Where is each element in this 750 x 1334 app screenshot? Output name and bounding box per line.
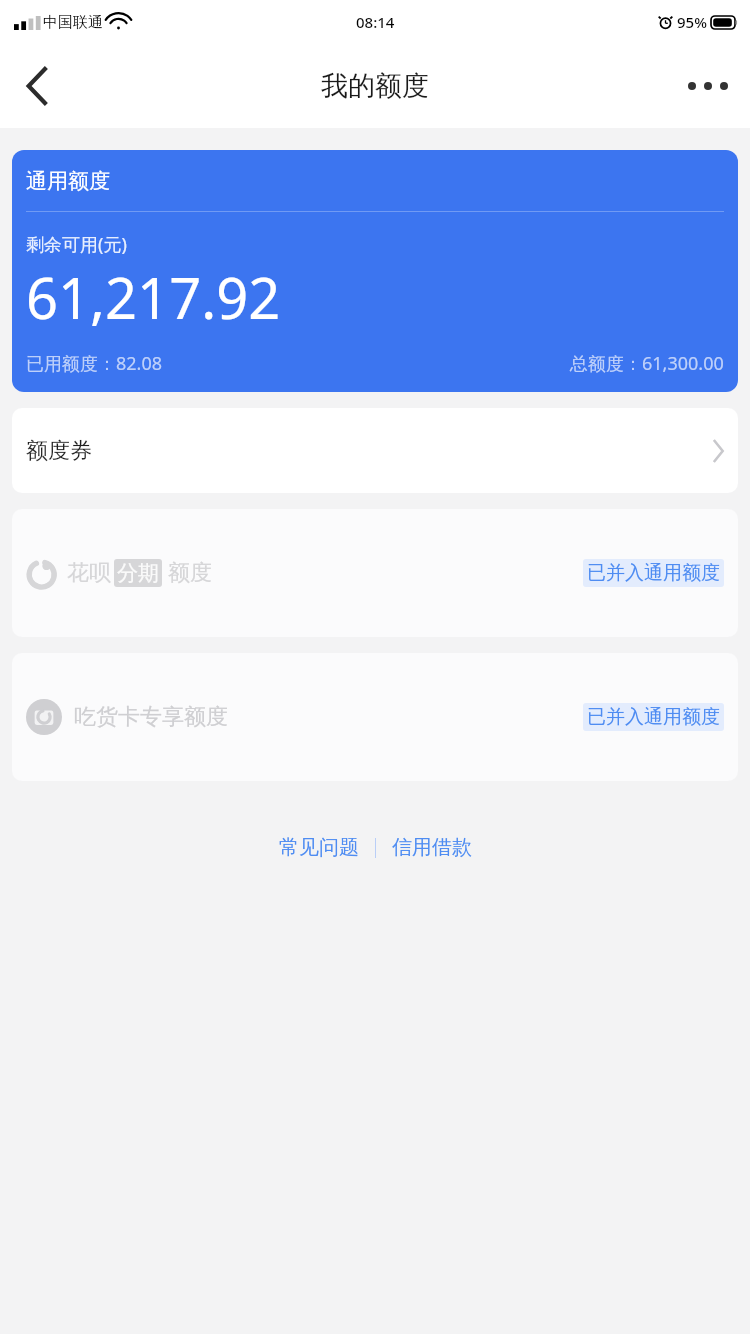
- button[interactable]: 花呗: [12, 509, 738, 637]
- button[interactable]: 吃货卡专享额度: [12, 653, 738, 781]
- staticText: 常见问题: [279, 835, 359, 860]
- button[interactable]: 常见问题: [273, 831, 365, 864]
- staticText: 额度: [168, 559, 212, 587]
- staticText: 我的额度: [321, 69, 429, 103]
- staticText: 61,217.92: [26, 259, 281, 335]
- staticText: 08:14: [356, 12, 395, 32]
- button[interactable]: 通用额度: [12, 150, 738, 392]
- staticText: 已并入通用额度: [587, 561, 720, 585]
- button[interactable]: Back: [8, 57, 66, 115]
- staticText: 吃货卡专享额度: [74, 703, 228, 731]
- staticText: 分期: [117, 560, 159, 586]
- staticText: 花呗: [67, 559, 111, 587]
- staticText: 95%: [677, 12, 707, 32]
- staticText: 中国联通: [43, 13, 103, 32]
- staticText: 信用借款: [392, 835, 472, 860]
- button[interactable]: 信用借款: [386, 831, 478, 864]
- staticText: 额度券: [26, 437, 92, 465]
- staticText: 剩余可用(元): [26, 232, 127, 257]
- button[interactable]: More options: [680, 58, 736, 114]
- staticText: 已并入通用额度: [587, 705, 720, 729]
- staticText: 通用额度: [26, 168, 110, 194]
- staticText: 已用额度：82.08: [26, 351, 163, 376]
- button[interactable]: 额度券: [12, 408, 738, 493]
- staticText: 总额度：61,300.00: [570, 351, 724, 376]
